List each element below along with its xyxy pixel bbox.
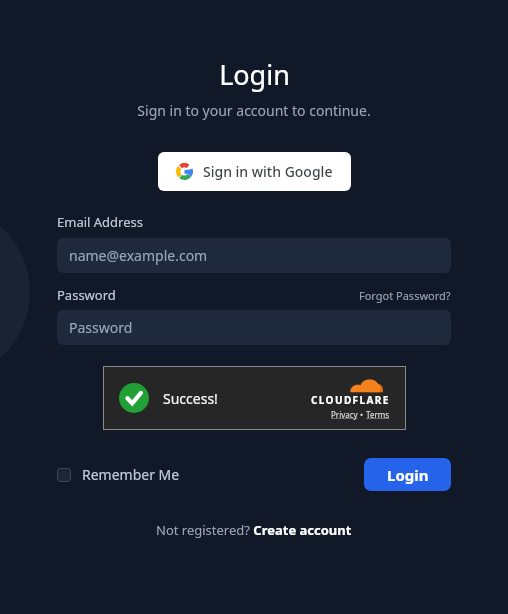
button[interactable]: Forgot Password? (359, 288, 451, 303)
staticText: Terms (366, 409, 390, 420)
staticText: Sign in with Google (203, 162, 333, 181)
staticText: Password (69, 318, 133, 337)
button[interactable]: Remember Me (57, 461, 180, 488)
staticText: CLOUDFLARE (311, 393, 390, 407)
staticText: Login (219, 56, 290, 93)
button[interactable]: Terms (366, 409, 390, 420)
staticText: Forgot Password? (359, 288, 451, 303)
button[interactable]: Login (364, 458, 451, 491)
button[interactable]: Privacy (331, 409, 358, 420)
staticText: Email Address (57, 213, 143, 231)
staticText: Privacy (331, 409, 358, 420)
staticText: Not registered? Create account (156, 521, 352, 539)
staticText: Remember Me (82, 465, 180, 484)
button[interactable]: Password (57, 310, 451, 345)
button[interactable]: Success! (103, 366, 406, 430)
staticText: • (358, 409, 366, 420)
staticText: name@example.com (69, 246, 208, 265)
button[interactable]: Sign in with Google (158, 152, 351, 191)
staticText: Success! (163, 389, 218, 408)
staticText: Password (57, 286, 116, 304)
button[interactable]: name@example.com (57, 238, 451, 273)
staticText: Sign in to your account to continue. (137, 101, 371, 120)
button[interactable]: Not registered? Create account (156, 521, 352, 539)
staticText: Login (387, 465, 429, 485)
